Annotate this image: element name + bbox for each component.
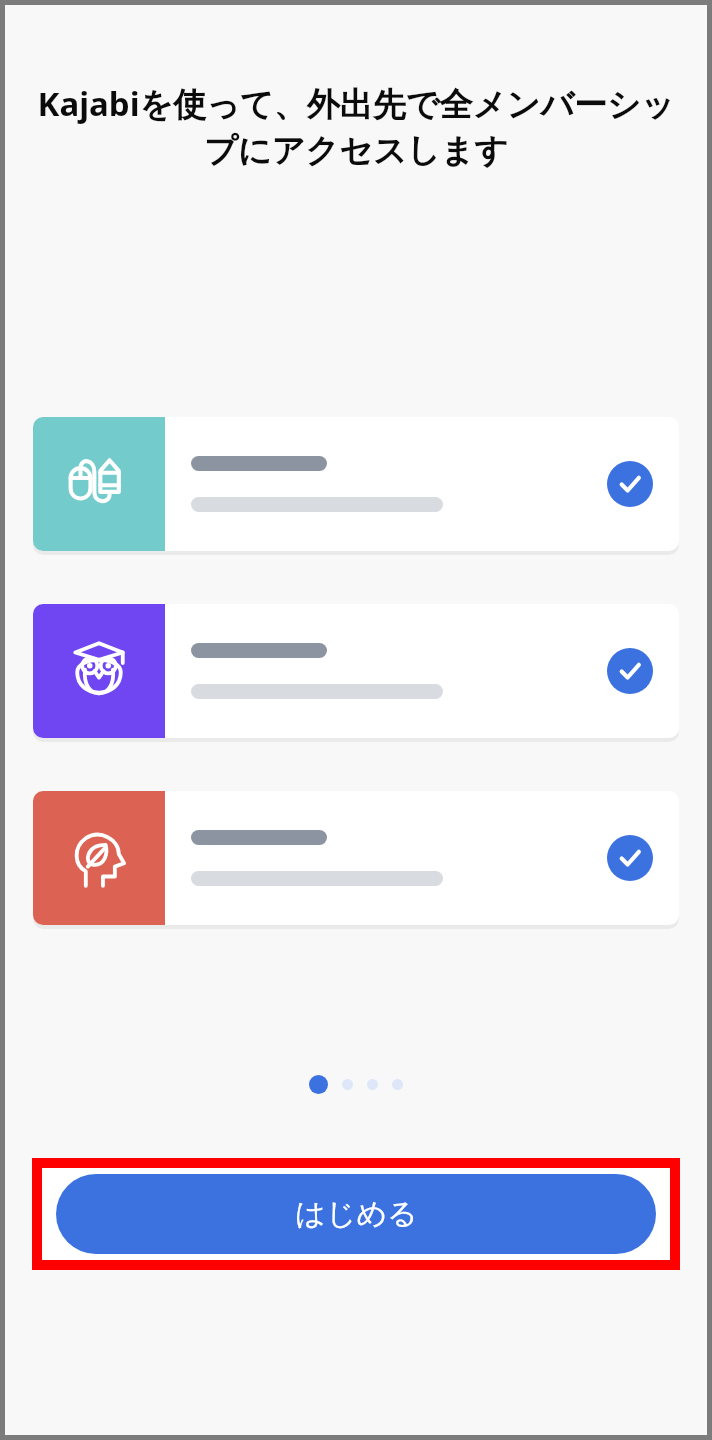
button[interactable]: Mindfulness [33,791,679,925]
other: Selected [607,461,653,507]
other: Selected [607,835,653,881]
other: Courses [66,638,132,704]
other: Selected [607,648,653,694]
staticText: はじめる [295,1195,418,1233]
button[interactable]: Courses [33,604,679,738]
button[interactable]: はじめる [56,1174,656,1254]
button[interactable]: Design tools [33,417,679,551]
staticText: Kajabiを使って、外出先で全メンバーシップにアクセスします [32,81,680,172]
other: Design tools [66,451,132,517]
other: Mindfulness [66,825,132,891]
